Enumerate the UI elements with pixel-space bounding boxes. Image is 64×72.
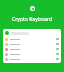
staticText: Crypto Keyboard (0, 16, 64, 23)
